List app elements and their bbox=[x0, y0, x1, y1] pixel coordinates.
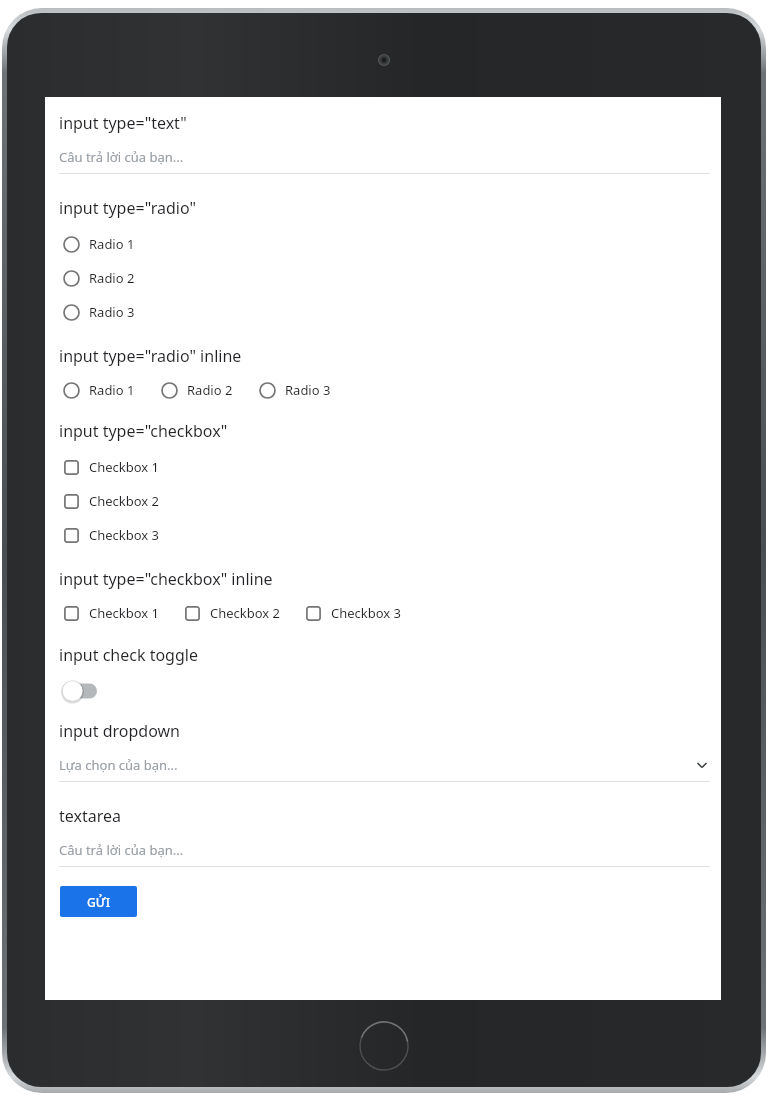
staticText: Radio 3 bbox=[89, 303, 135, 321]
staticText: input type="checkbox" bbox=[59, 420, 228, 442]
other: Open dropdown bbox=[696, 758, 708, 772]
staticText: input type="radio" inline bbox=[59, 345, 242, 367]
staticText: Checkbox 1 bbox=[89, 458, 160, 476]
button[interactable]: GỬI bbox=[60, 886, 137, 917]
staticText: Radio 2 bbox=[187, 381, 233, 399]
staticText: textarea bbox=[59, 805, 121, 827]
staticText: Lựa chọn của bạn... bbox=[59, 756, 696, 774]
staticText: Checkbox 3 bbox=[89, 526, 160, 544]
staticText: GỬI bbox=[87, 894, 110, 910]
button[interactable]: Radio 3 bbox=[59, 295, 710, 329]
button[interactable]: Checkbox 2 bbox=[59, 484, 710, 518]
button[interactable]: Radio 1 bbox=[59, 375, 135, 405]
button[interactable]: Radio 3 bbox=[233, 375, 331, 405]
staticText: Checkbox 2 bbox=[89, 492, 160, 510]
staticText: Checkbox 2 bbox=[210, 604, 281, 622]
staticText: input type="checkbox" inline bbox=[59, 568, 273, 590]
button[interactable]: Câu trả lời của bạn... bbox=[59, 827, 710, 867]
button[interactable]: Checkbox 2 bbox=[160, 598, 281, 628]
staticText: input type="radio" bbox=[59, 197, 196, 219]
button[interactable]: Toggle switch, off bbox=[61, 680, 105, 702]
staticText: Câu trả lời của bạn... bbox=[59, 148, 710, 166]
staticText: input type="text" bbox=[59, 112, 187, 134]
staticText: Radio 1 bbox=[89, 381, 135, 399]
staticText: Checkbox 3 bbox=[331, 604, 402, 622]
staticText: Câu trả lời của bạn... bbox=[59, 841, 710, 859]
staticText: Radio 1 bbox=[89, 235, 135, 253]
button[interactable]: Checkbox 1 bbox=[59, 598, 160, 628]
button[interactable]: Checkbox 1 bbox=[59, 450, 710, 484]
staticText: input check toggle bbox=[59, 644, 198, 666]
staticText: Checkbox 1 bbox=[89, 604, 160, 622]
staticText: Radio 3 bbox=[285, 381, 331, 399]
button[interactable]: Radio 2 bbox=[135, 375, 233, 405]
staticText: Radio 2 bbox=[89, 269, 135, 287]
other: Home bbox=[358, 1020, 410, 1072]
button[interactable]: Checkbox 3 bbox=[59, 518, 710, 552]
button[interactable]: Câu trả lời của bạn... bbox=[59, 134, 710, 174]
staticText: input dropdown bbox=[59, 720, 180, 742]
button[interactable]: Checkbox 3 bbox=[281, 598, 402, 628]
button[interactable]: Radio 2 bbox=[59, 261, 710, 295]
button[interactable]: Lựa chọn của bạn... bbox=[59, 742, 710, 782]
button[interactable]: Radio 1 bbox=[59, 227, 710, 261]
